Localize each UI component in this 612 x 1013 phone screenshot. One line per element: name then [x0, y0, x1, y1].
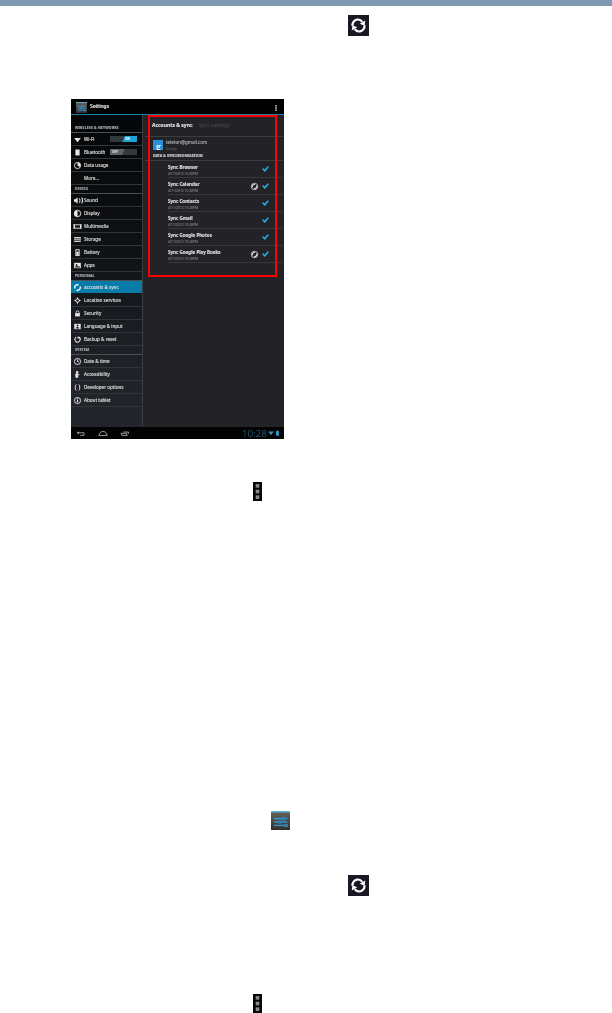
button[interactable]: More options [253, 482, 262, 501]
button[interactable]: Language & input [71, 320, 142, 332]
staticText: Sync settings [199, 122, 230, 129]
button[interactable]: Sound [71, 194, 142, 206]
staticText: Sync Google Play Books [168, 249, 221, 255]
staticText: Bluetooth [84, 149, 106, 155]
button[interactable]: Data usage [71, 159, 142, 171]
staticText: 4/11/2012 10:28PM [168, 256, 198, 260]
staticText: 4/11/2012 10:28PM [168, 239, 198, 243]
staticText: teleton@gmail.com [166, 139, 208, 145]
staticText: Security [84, 310, 102, 316]
button[interactable]: More... [71, 172, 142, 184]
button[interactable]: OFF [110, 149, 137, 155]
button[interactable]: Accessibility [71, 368, 142, 380]
staticText: 4/11/2012 10:28PM [168, 222, 198, 226]
staticText: g [156, 140, 161, 150]
button[interactable]: About tablet [71, 394, 142, 406]
button[interactable]: Date & time [71, 355, 142, 367]
button[interactable]: Sync [348, 15, 369, 36]
button[interactable]: Sync Google Photos [143, 229, 284, 245]
staticText: 10:28 [242, 427, 267, 439]
staticText: Location services [84, 297, 121, 303]
button[interactable]: Developer options [71, 381, 142, 393]
staticText: Date & time [84, 358, 110, 364]
staticText: Display [84, 210, 100, 216]
button[interactable]: Display [71, 207, 142, 219]
staticText: Battery [84, 249, 100, 255]
staticText: About tablet [84, 397, 111, 403]
button[interactable]: Settings [76, 102, 87, 113]
staticText: accounts & sync [84, 284, 119, 290]
staticText: Storage [84, 236, 101, 242]
button[interactable]: Home [98, 429, 108, 438]
staticText: Sync Google Photos [168, 232, 212, 238]
staticText: Language & input [84, 323, 123, 329]
staticText: DATA & SYNCHRONIZATION [153, 153, 203, 158]
staticText: Accessibility [84, 371, 110, 377]
staticText: ON [125, 137, 131, 141]
staticText: Sync Contacts [168, 198, 200, 204]
button[interactable]: Accounts & sync [152, 120, 193, 131]
button[interactable]: Sync Browser [143, 161, 284, 177]
button[interactable]: g [153, 137, 284, 152]
staticText: Wi-Fi [84, 136, 95, 142]
staticText: Sync Gmail [168, 215, 193, 221]
button[interactable]: Sync Contacts [143, 195, 284, 211]
button[interactable]: Settings [271, 811, 290, 830]
button[interactable]: accounts & sync [71, 281, 142, 293]
staticText: WIRELESS & NETWORKS [75, 125, 119, 130]
button[interactable]: Wi-Fi [71, 133, 142, 145]
button[interactable]: Back [76, 429, 86, 438]
button[interactable]: ON [110, 136, 137, 142]
staticText: Google [166, 146, 178, 150]
staticText: 4/11/2012 10:28PM [168, 205, 198, 209]
button[interactable]: Security [71, 307, 142, 319]
staticText: Sync Browser [168, 164, 198, 170]
button[interactable]: Sync [348, 875, 369, 896]
staticText: SYSTEM [75, 347, 90, 352]
button[interactable]: Battery [71, 246, 142, 258]
staticText: Settings [90, 103, 110, 110]
staticText: 4/11/2012 10:28PM [168, 188, 198, 192]
staticText: 4/11/2012 10:28PM [168, 171, 198, 175]
staticText: Developer options [84, 384, 124, 390]
staticText: Backup & reset [84, 336, 117, 342]
button[interactable]: Sync Google Play Books [143, 246, 284, 262]
button[interactable]: Backup & reset [71, 333, 142, 345]
staticText: More... [84, 175, 100, 181]
staticText: Data usage [84, 162, 109, 168]
button[interactable]: Storage [71, 233, 142, 245]
staticText: PERSONAL [75, 273, 95, 278]
staticText: Sync Calendar [168, 181, 200, 187]
button[interactable]: More options [253, 994, 262, 1013]
staticText: Apps [84, 262, 95, 268]
staticText: Accounts & sync [152, 122, 193, 129]
button[interactable]: Sync Gmail [143, 212, 284, 228]
staticText: OFF [112, 150, 119, 154]
staticText: DEVICE [75, 186, 89, 191]
button[interactable]: Multimedia [71, 220, 142, 232]
button[interactable]: Apps [71, 259, 142, 271]
button[interactable]: Bluetooth [71, 146, 142, 158]
button[interactable]: More options [272, 100, 280, 114]
button[interactable]: Location services [71, 294, 142, 306]
button[interactable]: Sync settings [199, 120, 230, 131]
staticText: Sound [84, 197, 98, 203]
button[interactable]: Sync Calendar [143, 178, 284, 194]
button[interactable]: Recents [120, 429, 130, 438]
staticText: Multimedia [84, 223, 109, 229]
